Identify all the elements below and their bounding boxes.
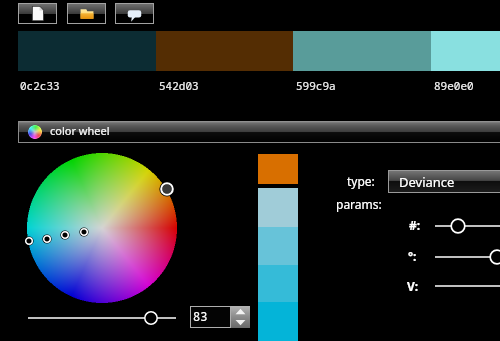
button[interactable]: Decrease <box>231 317 250 328</box>
button[interactable] <box>158 180 176 198</box>
button[interactable] <box>20 308 184 328</box>
button[interactable]: color wheel <box>19 121 500 142</box>
button[interactable] <box>428 215 500 237</box>
staticText: type: <box>347 173 375 189</box>
button[interactable]: Open folder <box>68 4 105 23</box>
staticText: 599c9a <box>296 78 336 93</box>
button[interactable]: Deviance <box>389 171 500 192</box>
button[interactable] <box>23 235 35 247</box>
button[interactable]: Increase <box>231 306 250 317</box>
staticText: °: <box>408 248 417 264</box>
button[interactable] <box>428 275 500 297</box>
staticText: 89e0e0 <box>434 78 474 93</box>
staticText: color wheel <box>50 123 110 138</box>
button[interactable]: Comment <box>116 4 153 23</box>
button[interactable]: New file <box>19 4 56 23</box>
staticText: 83 <box>193 308 208 324</box>
staticText: #: <box>409 217 421 233</box>
staticText: 0c2c33 <box>20 78 60 93</box>
staticText: V: <box>407 278 419 294</box>
button[interactable] <box>78 226 90 238</box>
button[interactable] <box>59 229 71 241</box>
button[interactable] <box>41 233 53 245</box>
staticText: 542d03 <box>159 78 199 93</box>
staticText: Deviance <box>399 173 455 191</box>
button[interactable]: 83 <box>191 307 230 327</box>
staticText: params: <box>336 196 382 212</box>
button[interactable] <box>428 246 500 268</box>
